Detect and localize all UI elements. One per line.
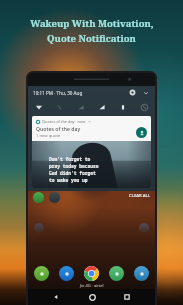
staticText: Don't forget to — [49, 156, 91, 162]
button[interactable]: Mobile data 2 — [97, 102, 107, 112]
staticText: Jio 4G · airtel — [80, 283, 104, 288]
button[interactable]: Contacts — [134, 266, 149, 281]
staticText: pray today because — [49, 163, 99, 169]
staticText: God didn't forget — [49, 170, 96, 176]
button[interactable]: WhatsApp — [33, 192, 44, 203]
staticText: Quotes of the day — [36, 125, 81, 132]
staticText: 1 new quote — [36, 133, 61, 139]
button[interactable]: Wi-Fi — [34, 102, 44, 112]
button[interactable]: Mobile data 1 — [76, 102, 86, 112]
button[interactable]: Back — [49, 290, 63, 304]
button[interactable]: Instagram — [49, 192, 60, 203]
button[interactable]: Expand — [141, 88, 150, 97]
button[interactable]: Maps — [109, 266, 124, 281]
button[interactable]: Quote image — [32, 141, 151, 188]
button[interactable]: CLEAR ALL — [129, 193, 150, 199]
button[interactable]: Recents — [120, 290, 134, 304]
button[interactable]: Home — [85, 290, 99, 304]
button[interactable]: Airplane mode — [55, 102, 65, 112]
staticText: 10:11 PM · Thu, 30 Aug — [33, 90, 83, 96]
button[interactable]: Quotes of the day · now — [32, 116, 151, 188]
button[interactable]: App — [139, 223, 149, 233]
button[interactable]: Do not disturb — [139, 102, 149, 112]
staticText: to wake you up — [49, 177, 88, 183]
button[interactable]: Chrome — [84, 266, 99, 281]
staticText: Quote Notification — [47, 32, 136, 45]
staticText: CLEAR ALL — [129, 193, 150, 199]
button[interactable]: Messages — [59, 266, 74, 281]
staticText: Wakeup With Motivation, — [30, 17, 154, 30]
button[interactable]: Phone — [34, 266, 49, 281]
button[interactable]: App — [34, 223, 44, 233]
button[interactable]: Battery — [118, 102, 128, 112]
button[interactable]: Settings — [128, 88, 137, 97]
staticText: Quotes of the day · now — [42, 119, 86, 124]
